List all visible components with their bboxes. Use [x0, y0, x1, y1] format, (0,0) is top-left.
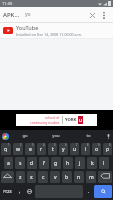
- staticText: t: [52, 146, 54, 153]
- staticText: m: [89, 174, 94, 181]
- staticText: b: [65, 174, 69, 181]
- button[interactable]: j: [75, 157, 85, 169]
- staticText: e: [29, 146, 32, 153]
- staticText: j: [79, 160, 81, 167]
- button[interactable]: go: [9, 130, 40, 142]
- button[interactable]: you: [40, 130, 72, 142]
- staticText: 8: [87, 143, 89, 147]
- staticText: u: [73, 146, 77, 153]
- staticText: x: [30, 174, 33, 181]
- button[interactable]: .: [85, 185, 92, 198]
- staticText: c: [42, 174, 45, 181]
- button[interactable]: 5: [48, 143, 57, 155]
- staticText: go: [22, 133, 28, 139]
- button[interactable]: s: [15, 157, 25, 169]
- staticText: 9: [98, 143, 100, 147]
- button[interactable]: school of: [0, 110, 113, 130]
- staticText: to: [86, 133, 91, 139]
- staticText: 7: [76, 143, 78, 147]
- staticText: 4: [43, 143, 45, 147]
- staticText: you: [52, 133, 60, 139]
- button[interactable]: c: [38, 171, 48, 183]
- button[interactable]: n: [74, 171, 84, 183]
- button[interactable]: More options: [98, 9, 110, 21]
- staticText: a: [7, 160, 10, 167]
- staticText: y: [62, 146, 65, 153]
- button[interactable]: Change keyboard: [25, 185, 33, 198]
- button[interactable]: to: [72, 130, 104, 142]
- button[interactable]: k: [87, 157, 97, 169]
- button[interactable]: v: [50, 171, 60, 183]
- button[interactable]: 4: [37, 143, 46, 155]
- staticText: v: [54, 174, 57, 181]
- button[interactable]: Search: [94, 185, 112, 198]
- staticText: l: [103, 160, 105, 167]
- button[interactable]: Voice input: [104, 130, 113, 142]
- staticText: U: [79, 118, 83, 123]
- staticText: 5: [54, 143, 56, 147]
- staticText: h: [66, 160, 70, 167]
- button[interactable]: f: [39, 157, 49, 169]
- staticText: o: [95, 146, 99, 153]
- staticText: 2: [20, 143, 22, 147]
- button[interactable]: 3: [25, 143, 35, 155]
- staticText: yo: [25, 11, 31, 18]
- staticText: g: [54, 160, 58, 167]
- button[interactable]: 2: [13, 143, 23, 155]
- staticText: k: [91, 160, 94, 167]
- button[interactable]: d: [27, 157, 37, 169]
- staticText: continuing studies: [30, 120, 60, 125]
- staticText: r: [40, 146, 43, 153]
- staticText: school of: [45, 115, 60, 120]
- staticText: i: [85, 146, 87, 153]
- button[interactable]: b: [62, 171, 72, 183]
- button[interactable]: 7: [70, 143, 79, 155]
- staticText: 11:00: [2, 1, 13, 6]
- button[interactable]: l: [99, 157, 109, 169]
- staticText: f: [43, 160, 45, 167]
- button[interactable]: Clear: [86, 9, 98, 21]
- staticText: .: [88, 188, 90, 195]
- staticText: 6: [65, 143, 67, 147]
- staticText: ,: [19, 188, 21, 195]
- staticText: q: [4, 146, 8, 153]
- button[interactable]: m: [86, 171, 96, 183]
- staticText: ?123: [3, 189, 12, 194]
- staticText: z: [19, 174, 22, 181]
- button[interactable]: z: [16, 171, 25, 183]
- button[interactable]: ,: [16, 185, 23, 198]
- button[interactable]: h: [63, 157, 73, 169]
- staticText: APK...: [3, 11, 20, 19]
- staticText: Installed on Dec 14, 2008 11:00:00 a.m.: [16, 32, 82, 37]
- staticText: YORK: [65, 117, 77, 123]
- staticText: p: [106, 146, 110, 153]
- button[interactable]: a: [4, 157, 13, 169]
- button[interactable]: g: [51, 157, 61, 169]
- staticText: YouTube: [16, 24, 39, 31]
- button[interactable]: Backspace: [98, 171, 112, 183]
- staticText: 1: [8, 143, 10, 147]
- button[interactable]: 8: [81, 143, 90, 155]
- staticText: s: [19, 160, 22, 167]
- button[interactable]: 1: [1, 143, 11, 155]
- button[interactable]: x: [27, 171, 36, 183]
- button[interactable]: 6: [59, 143, 68, 155]
- button[interactable]: 0: [103, 143, 112, 155]
- staticText: d: [30, 160, 34, 167]
- button[interactable]: ?123: [1, 185, 14, 198]
- staticText: n: [77, 174, 81, 181]
- staticText: 0: [109, 143, 111, 147]
- button[interactable]: 9: [92, 143, 101, 155]
- staticText: 3: [32, 143, 34, 147]
- button[interactable]: Shift: [1, 171, 14, 183]
- button[interactable]: YouTube: [0, 23, 113, 38]
- staticText: w: [16, 146, 20, 153]
